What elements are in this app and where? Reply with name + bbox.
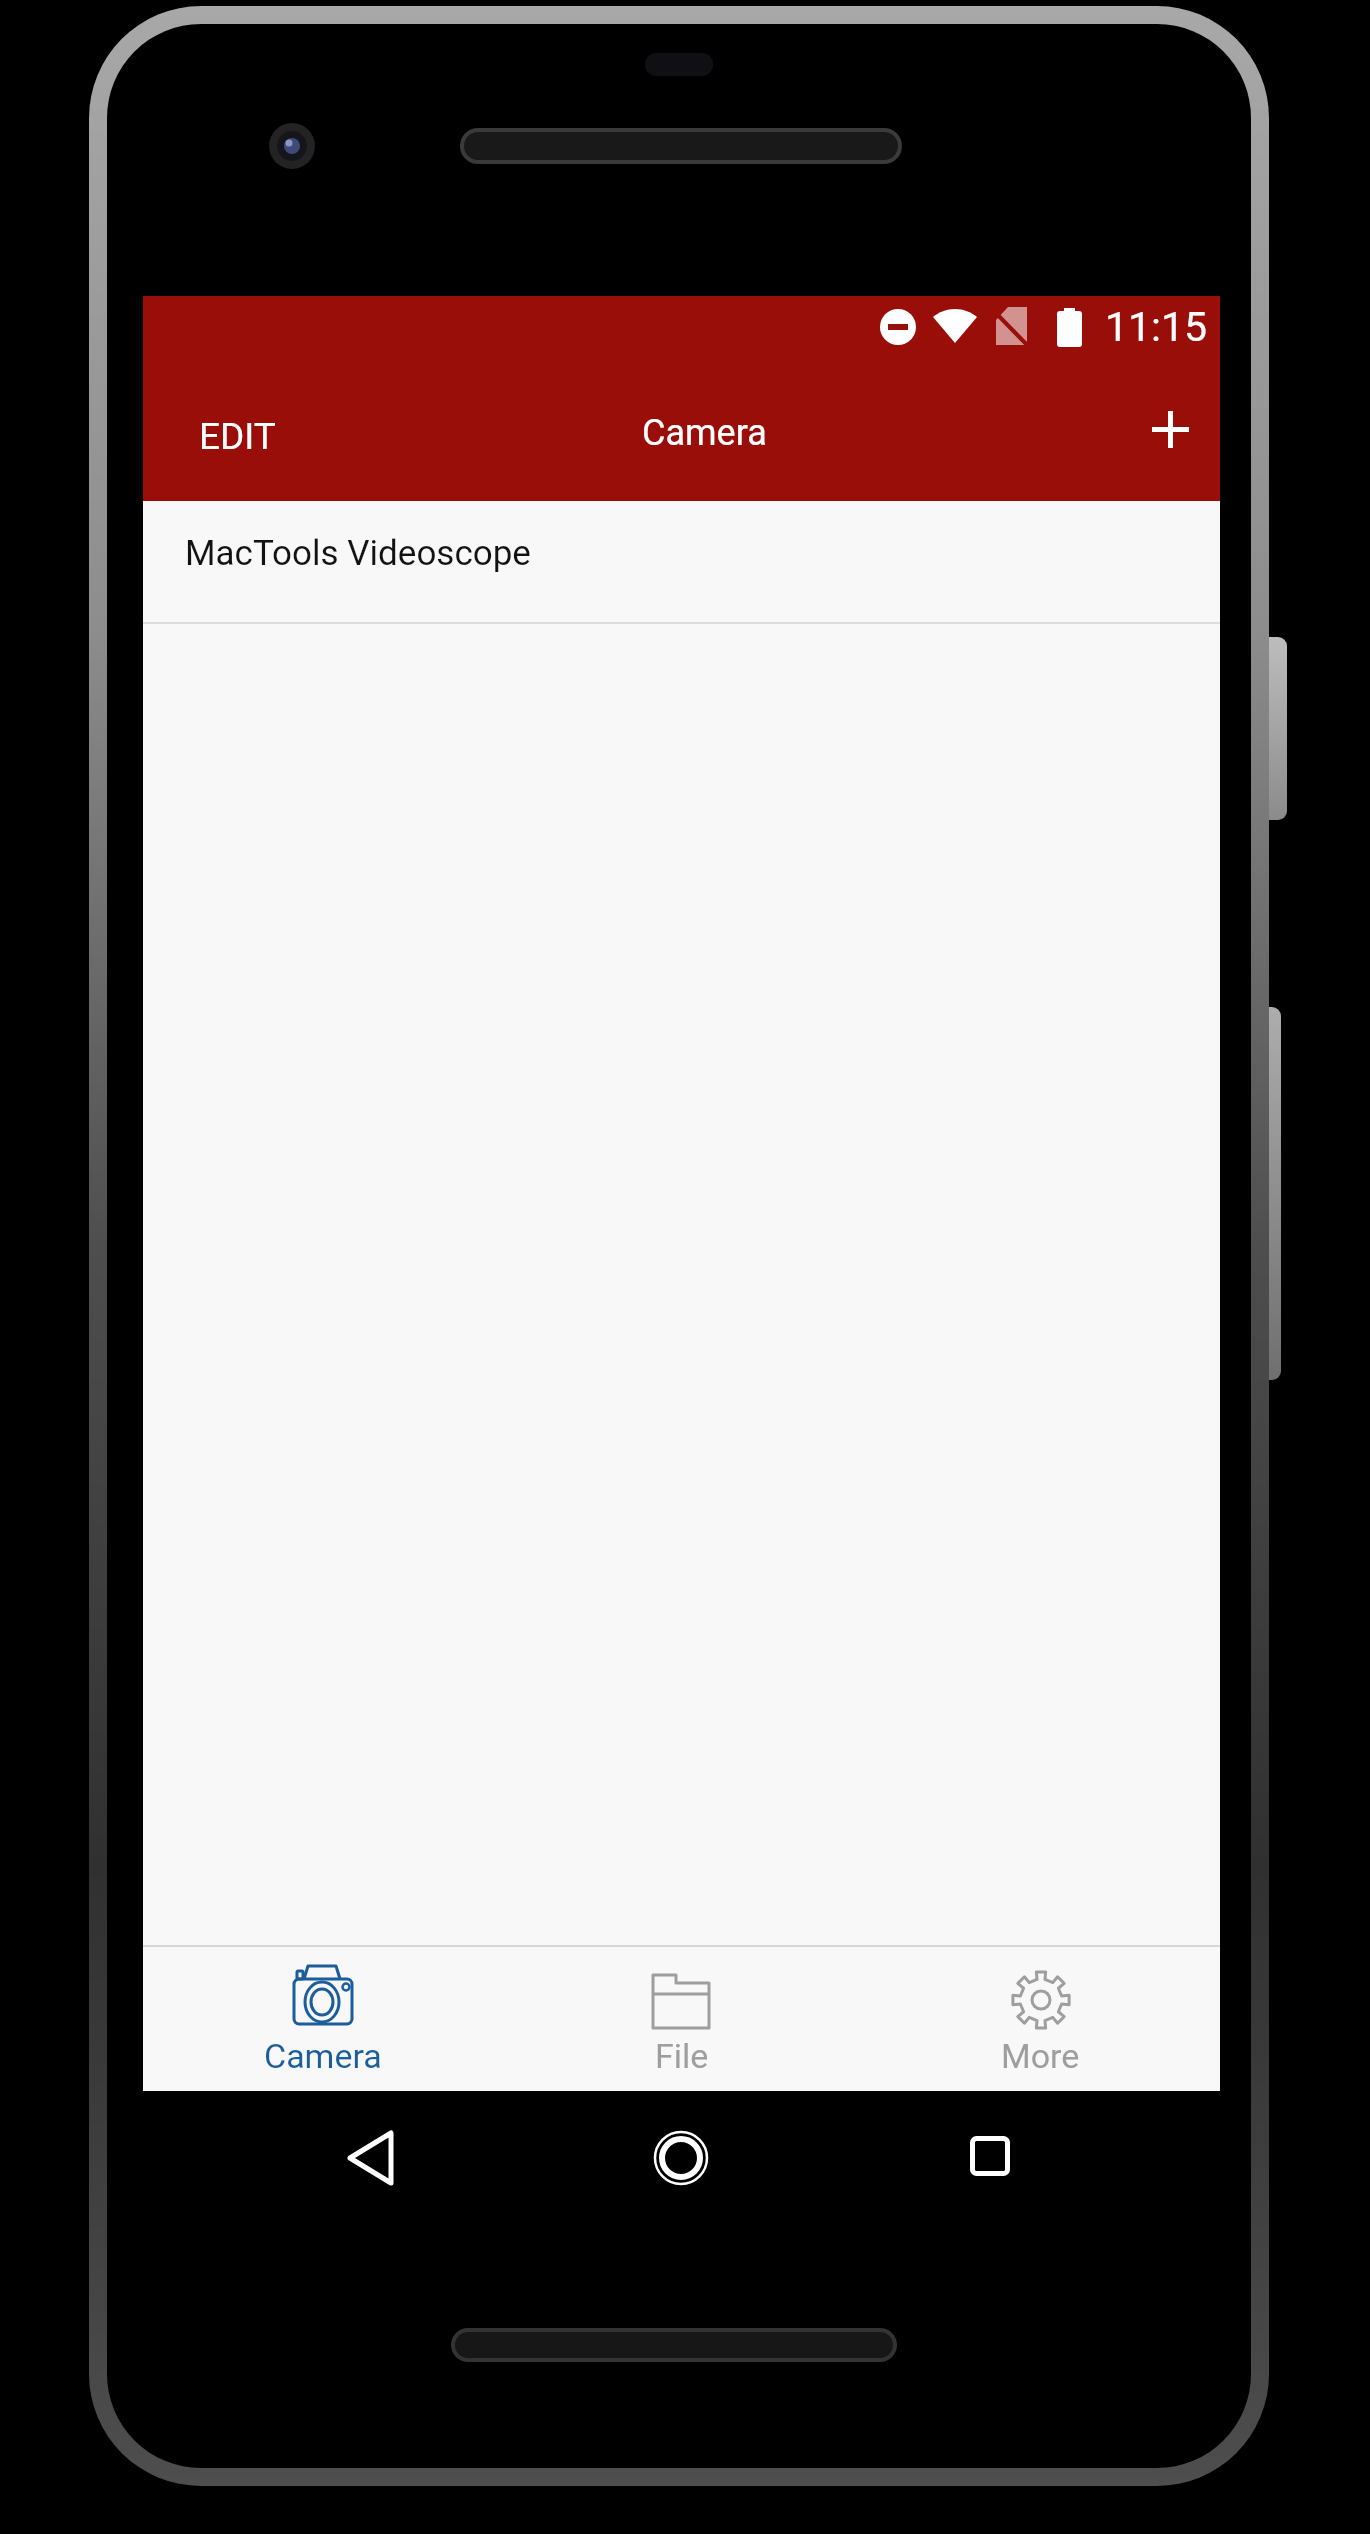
button[interactable] [348,2131,393,2185]
staticText: File [655,2036,709,2076]
button[interactable]: File [502,1947,861,2091]
staticText: MacTools Videoscope [185,533,531,574]
staticText: EDIT [199,415,276,458]
staticText: More [1001,2036,1080,2076]
button[interactable] [654,2131,708,2185]
button[interactable] [1128,387,1212,471]
button[interactable] [970,2136,1010,2176]
staticText: Camera [264,2036,382,2076]
button[interactable]: Camera [143,1947,502,2091]
staticText: 11:15 [1105,303,1208,351]
staticText: Camera [642,412,767,454]
button[interactable]: More [861,1947,1220,2091]
button[interactable]: MacTools Videoscope [143,501,1220,622]
button[interactable]: EDIT [167,391,307,481]
